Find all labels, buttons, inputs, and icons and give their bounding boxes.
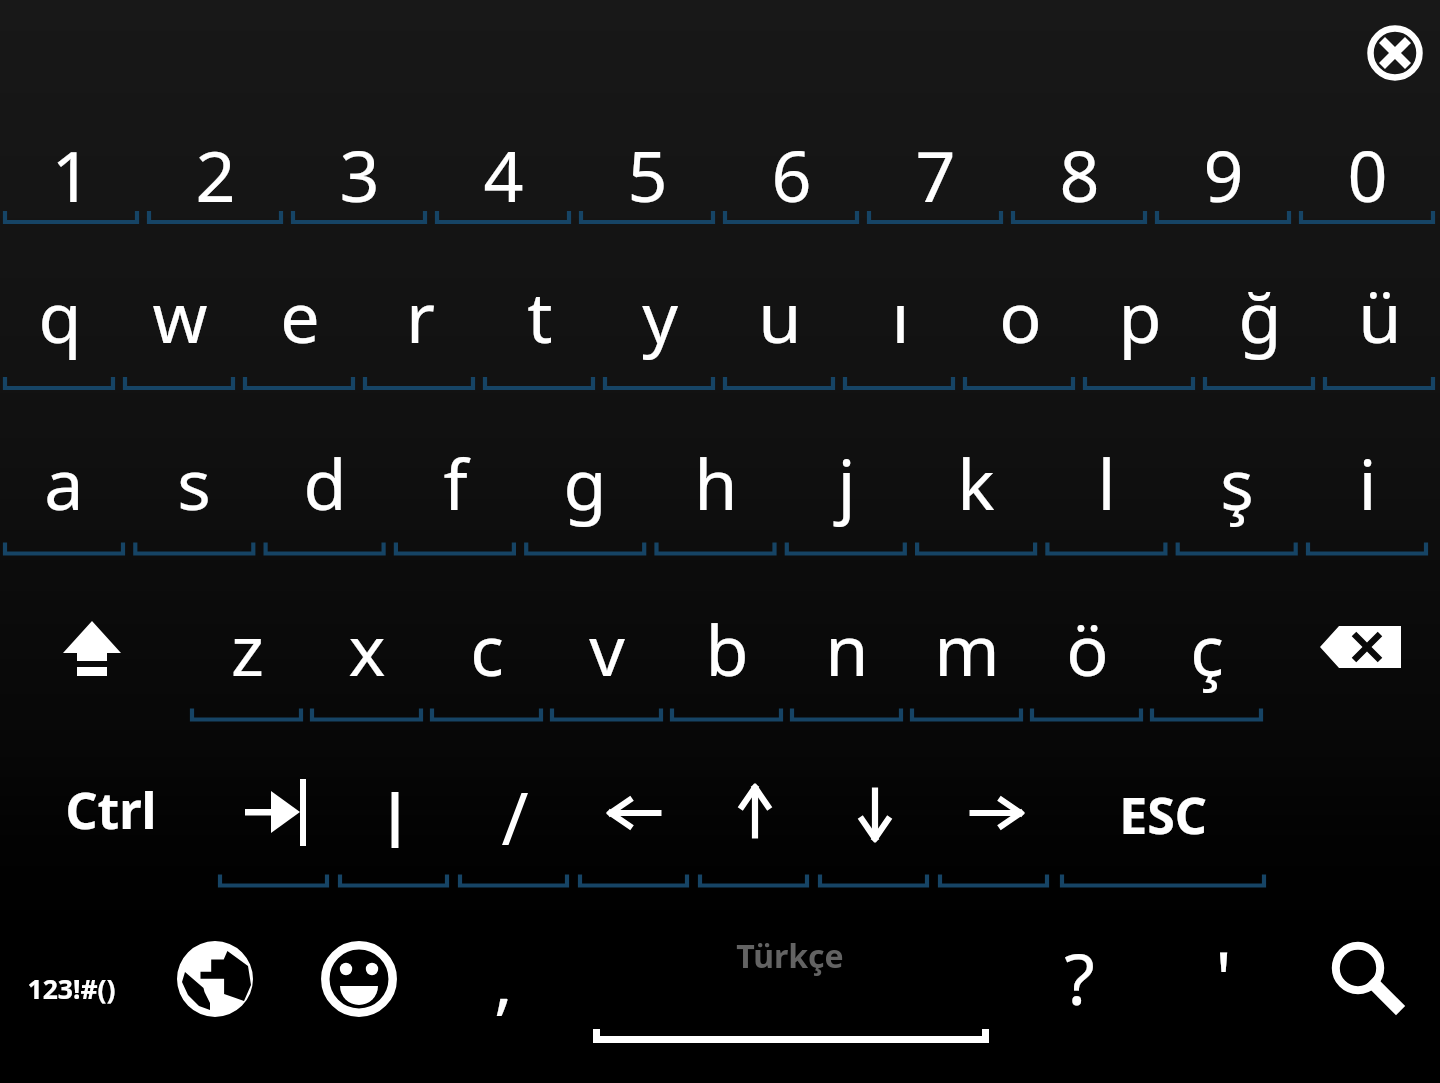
staticText: v (589, 601, 625, 696)
button[interactable]: 8 (1013, 110, 1145, 222)
button[interactable]: w (125, 222, 233, 388)
staticText: i (1358, 435, 1377, 530)
button[interactable]: p (1085, 222, 1193, 388)
staticText: 3 (339, 127, 380, 222)
button[interactable]: 4 (437, 110, 569, 222)
button[interactable]: a (5, 388, 123, 554)
staticText: 2 (195, 127, 236, 222)
button[interactable]: Slash (459, 760, 569, 885)
button[interactable]: Arrow right (939, 760, 1049, 880)
staticText: ı (891, 268, 910, 363)
staticText: m (934, 601, 1000, 696)
button[interactable]: y (605, 222, 713, 388)
button[interactable]: m (912, 554, 1021, 720)
button[interactable]: 1 (5, 110, 137, 222)
button[interactable]: Shift (0, 580, 190, 710)
staticText: Ctrl (65, 776, 157, 844)
staticText: 6 (771, 127, 812, 222)
button[interactable]: d (266, 388, 384, 554)
staticText: x (348, 601, 386, 696)
staticText: ş (1220, 435, 1254, 530)
staticText: w (152, 268, 208, 363)
button[interactable]: Türkçe (560, 920, 1030, 1070)
staticText: d (303, 435, 347, 530)
button[interactable]: o (965, 222, 1073, 388)
button[interactable]: Emoji (304, 924, 414, 1034)
button[interactable]: 123!#() (0, 920, 140, 1070)
button[interactable]: ö (1032, 554, 1141, 720)
button[interactable]: n (792, 554, 901, 720)
staticText: y (642, 268, 678, 363)
button[interactable]: u (725, 222, 833, 388)
button[interactable]: , (448, 920, 558, 1070)
button[interactable]: 0 (1301, 110, 1433, 222)
button[interactable]: Ctrl (20, 720, 200, 886)
button[interactable]: c (432, 554, 541, 720)
button[interactable]: ğ (1205, 222, 1313, 388)
button[interactable]: 9 (1157, 110, 1289, 222)
button[interactable]: Arrow left (579, 760, 689, 880)
button[interactable]: 6 (725, 110, 857, 222)
staticText: Türkçe (736, 934, 844, 978)
staticText: e (280, 268, 320, 363)
button[interactable]: s (135, 388, 253, 554)
button[interactable]: j (787, 388, 905, 554)
button[interactable]: ? (1024, 920, 1134, 1070)
button[interactable]: ' (1168, 920, 1278, 1070)
staticText: n (825, 601, 869, 696)
staticText: ü (1358, 268, 1402, 363)
staticText: g (563, 435, 607, 530)
button[interactable]: ESC (1062, 720, 1264, 886)
button[interactable]: Change language (160, 924, 270, 1034)
staticText: 9 (1203, 127, 1244, 222)
button[interactable]: ç (1152, 554, 1261, 720)
button[interactable]: e (245, 222, 353, 388)
staticText: 7 (915, 127, 956, 222)
staticText: 4 (483, 127, 524, 222)
staticText: s (177, 435, 211, 530)
staticText: 0 (1347, 127, 1388, 222)
staticText: o (999, 268, 1042, 363)
staticText: p (1118, 268, 1162, 363)
button[interactable]: ı (845, 222, 953, 388)
button[interactable]: Search (1303, 913, 1413, 1023)
button[interactable]: f (396, 388, 514, 554)
staticText: ' (1215, 927, 1232, 1028)
staticText: 8 (1059, 127, 1100, 222)
staticText: h (694, 435, 738, 530)
staticText: ö (1066, 601, 1109, 696)
staticText: ? (1064, 930, 1095, 1025)
button[interactable]: Pipe (339, 760, 449, 885)
staticText: a (44, 435, 84, 530)
button[interactable]: 5 (581, 110, 713, 222)
button[interactable]: x (312, 554, 421, 720)
button[interactable]: ü (1325, 222, 1433, 388)
button[interactable]: q (5, 222, 113, 388)
button[interactable]: l (1047, 388, 1165, 554)
button[interactable]: 7 (869, 110, 1001, 222)
button[interactable]: ş (1178, 388, 1296, 554)
button[interactable]: h (657, 388, 775, 554)
button[interactable]: t (485, 222, 593, 388)
button[interactable]: z (192, 554, 301, 720)
button[interactable]: k (917, 388, 1035, 554)
staticText: ğ (1238, 268, 1282, 363)
staticText: b (705, 601, 749, 696)
button[interactable]: b (672, 554, 781, 720)
button[interactable]: Backspace (1272, 580, 1440, 710)
button[interactable]: Arrow down (819, 760, 929, 880)
button[interactable]: Close keyboard (1340, 0, 1440, 106)
staticText: l (1097, 435, 1116, 530)
button[interactable]: 3 (293, 110, 425, 222)
button[interactable]: r (365, 222, 473, 388)
button[interactable]: i (1308, 388, 1426, 554)
button[interactable]: 2 (149, 110, 281, 222)
staticText: q (38, 268, 82, 363)
staticText: r (406, 268, 435, 363)
button[interactable]: g (526, 388, 644, 554)
button[interactable]: v (552, 554, 661, 720)
button[interactable]: Tab (219, 760, 329, 880)
button[interactable]: Arrow up (699, 760, 809, 880)
staticText: t (527, 268, 553, 363)
staticText: j (837, 435, 856, 530)
